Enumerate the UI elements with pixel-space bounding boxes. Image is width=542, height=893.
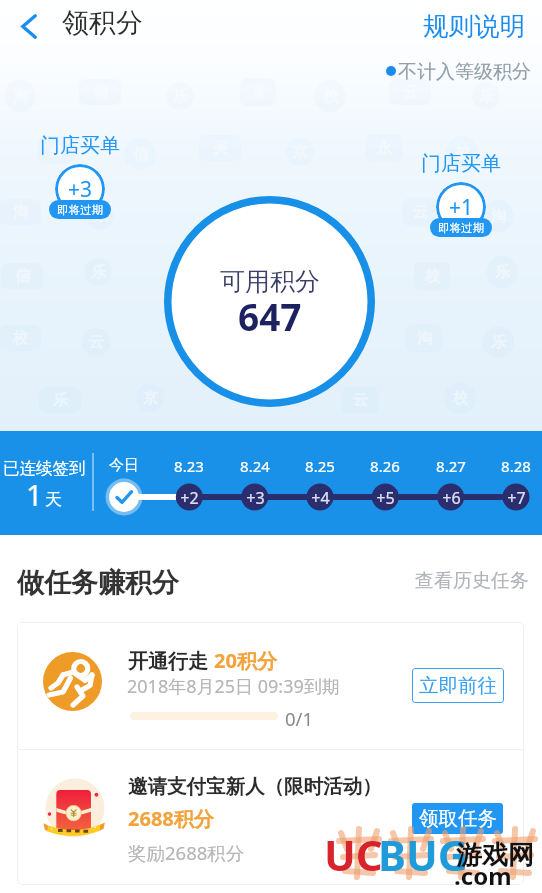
staticText: 奖励2688积分: [128, 840, 245, 865]
staticText: 淘: [491, 207, 506, 226]
staticText: 门店买单: [40, 133, 120, 158]
staticText: 查看历史任务: [415, 569, 529, 593]
staticText: +4: [311, 487, 330, 509]
staticText: 8.28: [501, 456, 531, 476]
staticText: .com: [454, 859, 512, 892]
staticText: 立即前往: [419, 673, 497, 698]
staticText: 领积分: [62, 6, 143, 40]
staticText: 云: [89, 333, 104, 352]
staticText: 开通行走: [128, 647, 214, 674]
staticText: 1: [26, 475, 43, 514]
staticText: 20积分: [214, 647, 277, 674]
staticText: +7: [507, 487, 526, 509]
staticText: 门店买单: [421, 151, 501, 176]
staticText: 即将过期: [57, 203, 103, 217]
button[interactable]: Back: [3, 0, 55, 52]
staticText: 乐: [91, 263, 106, 282]
staticText: 淘: [13, 203, 28, 222]
staticText: 校: [13, 329, 28, 348]
button[interactable]: 开通行走: [17, 622, 524, 749]
staticText: +2: [180, 487, 199, 509]
staticText: 乐: [53, 391, 68, 410]
staticText: 美: [213, 139, 228, 158]
staticText: 校: [425, 267, 440, 286]
staticText: 校: [453, 389, 468, 408]
staticText: 领取任务: [419, 806, 497, 831]
staticText: 规则说明: [423, 10, 525, 42]
staticText: 淘: [417, 329, 432, 348]
staticText: 校: [455, 143, 470, 162]
staticText: 信: [15, 267, 30, 286]
staticText: 647: [238, 291, 302, 341]
staticText: +3: [246, 487, 265, 509]
staticText: 不计入等级积分: [398, 60, 531, 81]
staticText: 0/1: [285, 706, 314, 731]
button[interactable]: 立即前往: [412, 668, 504, 703]
staticText: 乐: [93, 207, 108, 226]
staticText: 邀请支付宝新人（限时活动）: [128, 774, 382, 799]
staticText: UC: [324, 826, 383, 883]
staticText: 已连续签到: [3, 458, 86, 479]
staticText: 8.23: [174, 456, 204, 476]
staticText: 信: [133, 145, 148, 164]
staticText: 京: [143, 389, 158, 408]
staticText: 8.27: [436, 456, 466, 476]
staticText: 游戏网: [456, 839, 534, 872]
staticText: 云: [353, 391, 368, 410]
staticText: 乐: [495, 263, 510, 282]
staticText: 做任务赚积分: [17, 566, 179, 600]
staticText: 今日: [109, 456, 139, 475]
button[interactable]: 查看历史任务: [415, 566, 529, 596]
staticText: 2688积分: [128, 805, 214, 832]
staticText: 即将过期: [438, 221, 484, 235]
staticText: 8.24: [240, 456, 270, 476]
staticText: +6: [442, 487, 461, 509]
staticText: 会: [49, 141, 64, 160]
staticText: BUG: [378, 826, 469, 883]
staticText: 2018年8月25日 09:39到期: [127, 674, 340, 699]
staticText: 永: [377, 139, 392, 158]
staticText: 8.25: [305, 456, 335, 476]
button[interactable]: 邀请支付宝新人（限时活动）: [17, 750, 524, 885]
staticText: 可用积分: [220, 266, 320, 297]
staticText: +5: [376, 487, 395, 509]
staticText: +1: [449, 193, 474, 222]
staticText: 8.26: [370, 456, 400, 476]
staticText: +3: [68, 175, 93, 204]
staticText: 云: [413, 203, 428, 222]
staticText: 京: [293, 143, 308, 162]
button[interactable]: 领取任务: [412, 803, 503, 834]
staticText: 天: [45, 489, 62, 510]
staticText: 乐: [491, 333, 506, 352]
button[interactable]: 规则说明: [406, 0, 542, 52]
